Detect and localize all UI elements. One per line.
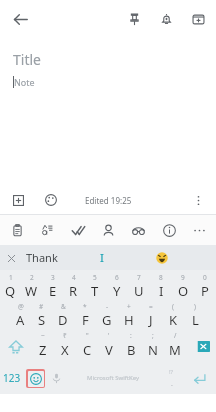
button[interactable]: Translate	[34, 217, 60, 243]
staticText: Q	[5, 282, 16, 300]
button[interactable]: 9	[172, 273, 194, 302]
button[interactable]: 7	[128, 273, 150, 302]
staticText: "	[86, 331, 89, 340]
button[interactable]: 0	[194, 273, 216, 302]
button[interactable]: Pin	[122, 7, 146, 31]
staticText: 6	[115, 273, 119, 282]
staticText: *	[83, 302, 87, 311]
button[interactable]: ₹	[54, 331, 76, 362]
button[interactable]: Backspace	[186, 331, 216, 362]
button[interactable]: Add attachment	[7, 189, 29, 211]
button[interactable]: *	[74, 302, 96, 331]
button[interactable]: -	[96, 302, 118, 331]
staticText: O	[178, 282, 189, 300]
button[interactable]: 2	[21, 273, 42, 302]
button[interactable]: Colour	[40, 189, 62, 211]
button[interactable]: More	[186, 217, 212, 243]
staticText: /	[174, 331, 177, 340]
staticText: P	[201, 282, 209, 300]
staticText: ~	[41, 331, 45, 340]
staticText: Z	[39, 341, 47, 359]
button[interactable]: Mark done	[65, 217, 91, 243]
button[interactable]: ~	[31, 331, 54, 362]
staticText: K	[169, 311, 178, 329]
staticText: '	[108, 331, 110, 340]
staticText: L	[192, 311, 199, 329]
staticText: 2	[30, 273, 34, 282]
staticText: )	[194, 302, 196, 311]
staticText: ₹	[63, 331, 67, 340]
button[interactable]: '	[98, 331, 120, 362]
button[interactable]: Clipboard	[4, 217, 30, 243]
staticText: 123	[3, 371, 21, 385]
button[interactable]: Emoji	[24, 362, 46, 394]
staticText: H	[124, 311, 134, 329]
staticText: Y	[113, 282, 121, 300]
staticText: Edited 19:25	[85, 195, 132, 206]
button[interactable]: 4	[63, 273, 84, 302]
staticText: D	[58, 311, 68, 329]
button[interactable]: 3	[42, 273, 63, 302]
staticText: &	[61, 302, 66, 311]
staticText: -	[106, 302, 109, 311]
button[interactable]: Info	[156, 217, 182, 243]
button[interactable]: Enter	[183, 362, 216, 394]
button[interactable]: &	[52, 302, 74, 331]
button[interactable]: Contact	[95, 217, 121, 243]
staticText: 3	[51, 273, 55, 282]
button[interactable]: 1	[0, 273, 21, 302]
staticText: 4	[72, 273, 76, 282]
staticText: F	[82, 311, 89, 329]
staticText: W	[25, 282, 38, 300]
staticText: !?	[169, 368, 174, 376]
button[interactable]: /	[164, 331, 186, 362]
button[interactable]: @	[10, 302, 31, 331]
button[interactable]: :	[120, 331, 142, 362]
staticText: +	[127, 302, 131, 311]
staticText: V	[105, 341, 113, 359]
button[interactable]: ;	[142, 331, 164, 362]
staticText: T	[91, 282, 99, 300]
staticText: A	[16, 311, 25, 329]
button[interactable]: 123	[0, 362, 24, 394]
staticText: 5	[93, 273, 97, 282]
staticText: C	[83, 341, 92, 359]
button[interactable]: Voice input	[46, 362, 67, 394]
button[interactable]: Immersive reader	[125, 217, 151, 243]
staticText: S	[38, 311, 46, 329]
button[interactable]: 8	[150, 273, 172, 302]
staticText: G	[102, 311, 112, 329]
staticText: =	[149, 302, 153, 311]
button[interactable]: More options	[187, 189, 209, 211]
staticText: X	[61, 341, 69, 359]
staticText: 1	[9, 273, 13, 282]
button[interactable]: Add to note	[186, 7, 210, 31]
staticText: E	[49, 282, 57, 300]
button[interactable]: Reminder	[154, 7, 178, 31]
button[interactable]: #	[31, 302, 52, 331]
button[interactable]: Microsoft SwiftKey	[67, 362, 159, 394]
button[interactable]: "	[76, 331, 98, 362]
button[interactable]: Emoji suggestion	[154, 250, 170, 266]
staticText: 9	[181, 273, 185, 282]
staticText: N	[148, 341, 158, 359]
button[interactable]: Back	[6, 5, 34, 33]
button[interactable]: Shift	[0, 331, 31, 362]
staticText: #	[39, 302, 44, 311]
staticText: ;	[152, 331, 154, 340]
staticText: Microsoft SwiftKey	[87, 374, 139, 382]
button[interactable]: )	[184, 302, 206, 331]
button[interactable]: 6	[106, 273, 128, 302]
staticText: J	[149, 311, 153, 329]
button[interactable]: Close suggestion bar	[3, 250, 19, 266]
button[interactable]: I	[100, 250, 104, 265]
button[interactable]: (	[162, 302, 184, 331]
staticText: (	[172, 302, 174, 311]
staticText: B	[127, 341, 136, 359]
staticText: 8	[159, 273, 163, 282]
button[interactable]: =	[140, 302, 162, 331]
button[interactable]: Thank	[26, 250, 58, 265]
button[interactable]: 5	[84, 273, 106, 302]
button[interactable]: +	[118, 302, 140, 331]
